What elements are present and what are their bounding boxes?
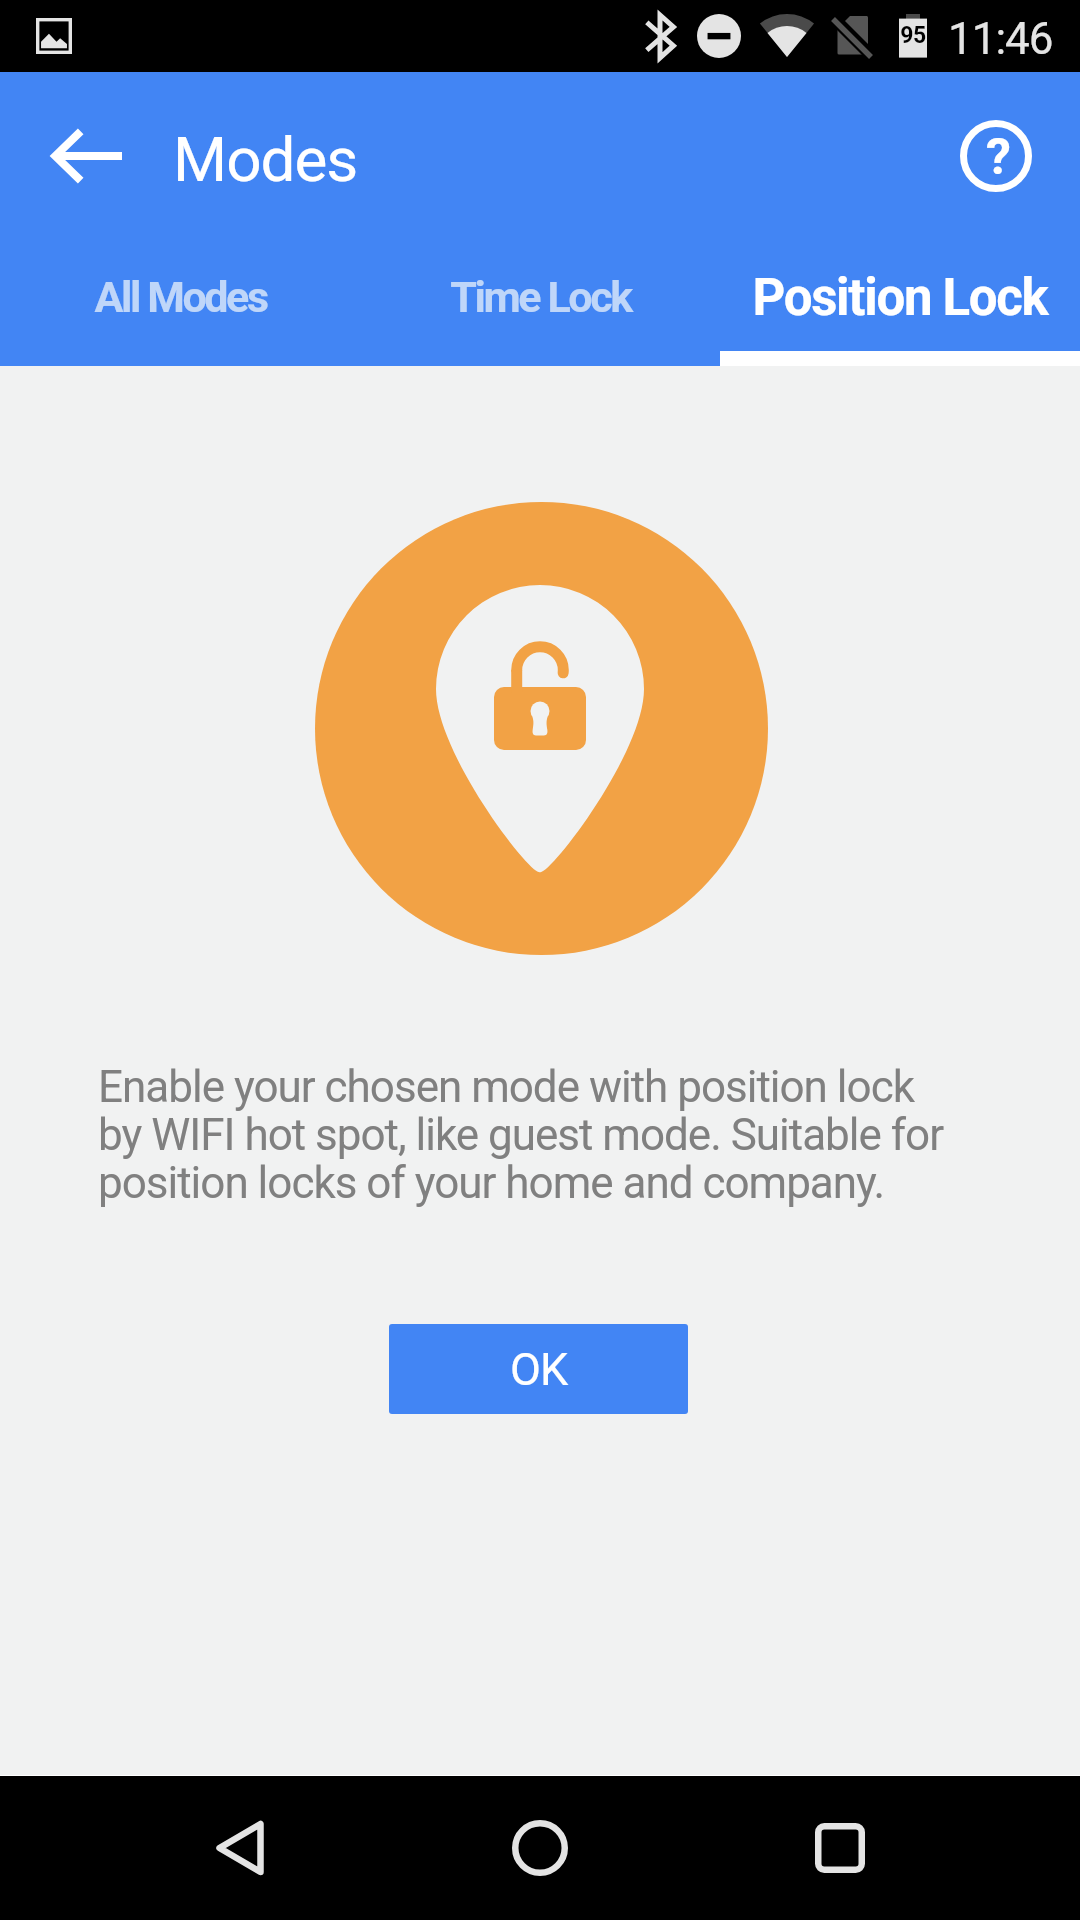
button[interactable]: Position Lock <box>720 228 1080 366</box>
button[interactable]: Home <box>490 1798 590 1898</box>
button[interactable]: OK <box>389 1324 688 1414</box>
button[interactable]: Recent apps <box>790 1798 890 1898</box>
button[interactable]: Time Lock <box>360 228 720 366</box>
staticText: All Modes <box>94 272 267 322</box>
staticText: Modes <box>173 123 358 196</box>
staticText: 11:46 <box>948 13 1053 65</box>
staticText: 95 <box>899 22 927 49</box>
button[interactable]: Help <box>940 100 1052 212</box>
staticText: ? <box>986 128 1011 187</box>
staticText: Time Lock <box>450 272 631 322</box>
button[interactable]: All Modes <box>0 228 360 366</box>
staticText: Enable your chosen mode with position lo… <box>98 1061 962 1209</box>
button[interactable]: Back <box>190 1798 290 1898</box>
button[interactable]: Navigate up <box>31 100 143 212</box>
staticText: Position Lock <box>752 268 1048 328</box>
staticText: OK <box>510 1343 568 1396</box>
